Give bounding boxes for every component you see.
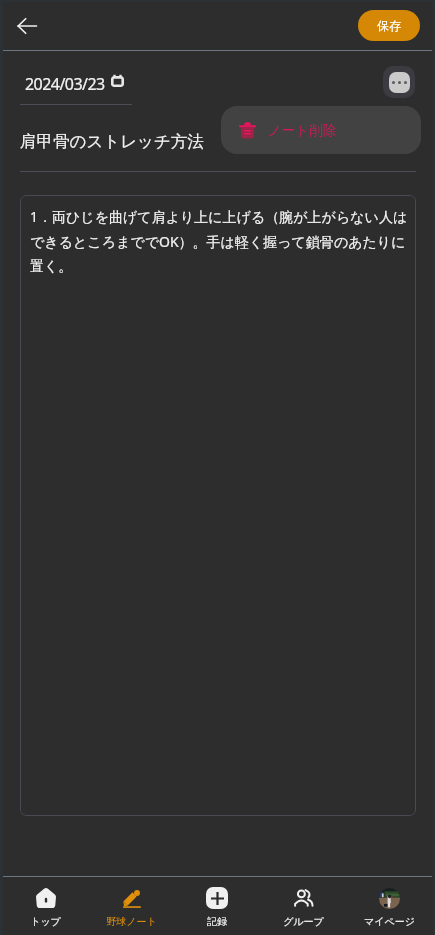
staticText: 1．両ひじを曲げて肩より上に上げる（腕が上がらない人はできるところまででOK）。…	[30, 207, 408, 275]
button[interactable]: マイページ	[346, 877, 432, 935]
staticText: ノート削除	[268, 122, 337, 139]
button[interactable]: ノート削除	[221, 106, 421, 154]
staticText: トップ	[30, 915, 61, 928]
button[interactable]: 記録	[174, 877, 260, 935]
staticText: 肩甲骨のストレッチ方法	[20, 131, 204, 152]
button[interactable]: Back	[10, 9, 44, 43]
button[interactable]: 保存	[358, 10, 420, 41]
staticText: 2024/03/23	[25, 73, 105, 95]
staticText: マイページ	[364, 915, 415, 928]
staticText: グループ	[283, 915, 324, 928]
button[interactable]: トップ	[3, 877, 88, 935]
button[interactable]: More options	[383, 66, 415, 98]
staticText: 保存	[377, 18, 401, 33]
staticText: 記録	[207, 915, 227, 928]
staticText: 野球ノート	[106, 915, 157, 928]
button[interactable]: グループ	[260, 877, 346, 935]
button[interactable]: 野球ノート	[88, 877, 174, 935]
